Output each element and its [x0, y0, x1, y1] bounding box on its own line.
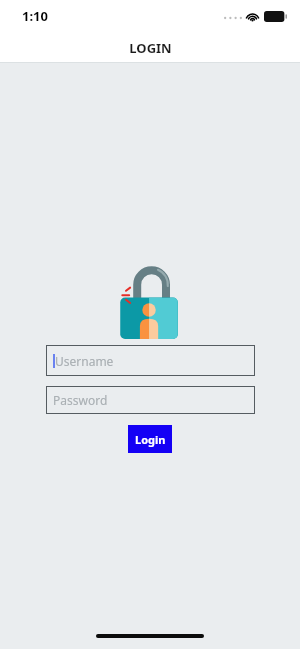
button[interactable]: Login: [128, 425, 172, 453]
staticText: Password: [53, 392, 108, 408]
button[interactable]: Username: [46, 345, 255, 376]
staticText: LOGIN: [129, 39, 172, 57]
staticText: 1:10: [22, 7, 48, 25]
other: Unlocked padlock: [118, 263, 182, 339]
staticText: Login: [135, 432, 166, 447]
button[interactable]: Password: [46, 386, 255, 414]
staticText: Username: [55, 353, 114, 369]
